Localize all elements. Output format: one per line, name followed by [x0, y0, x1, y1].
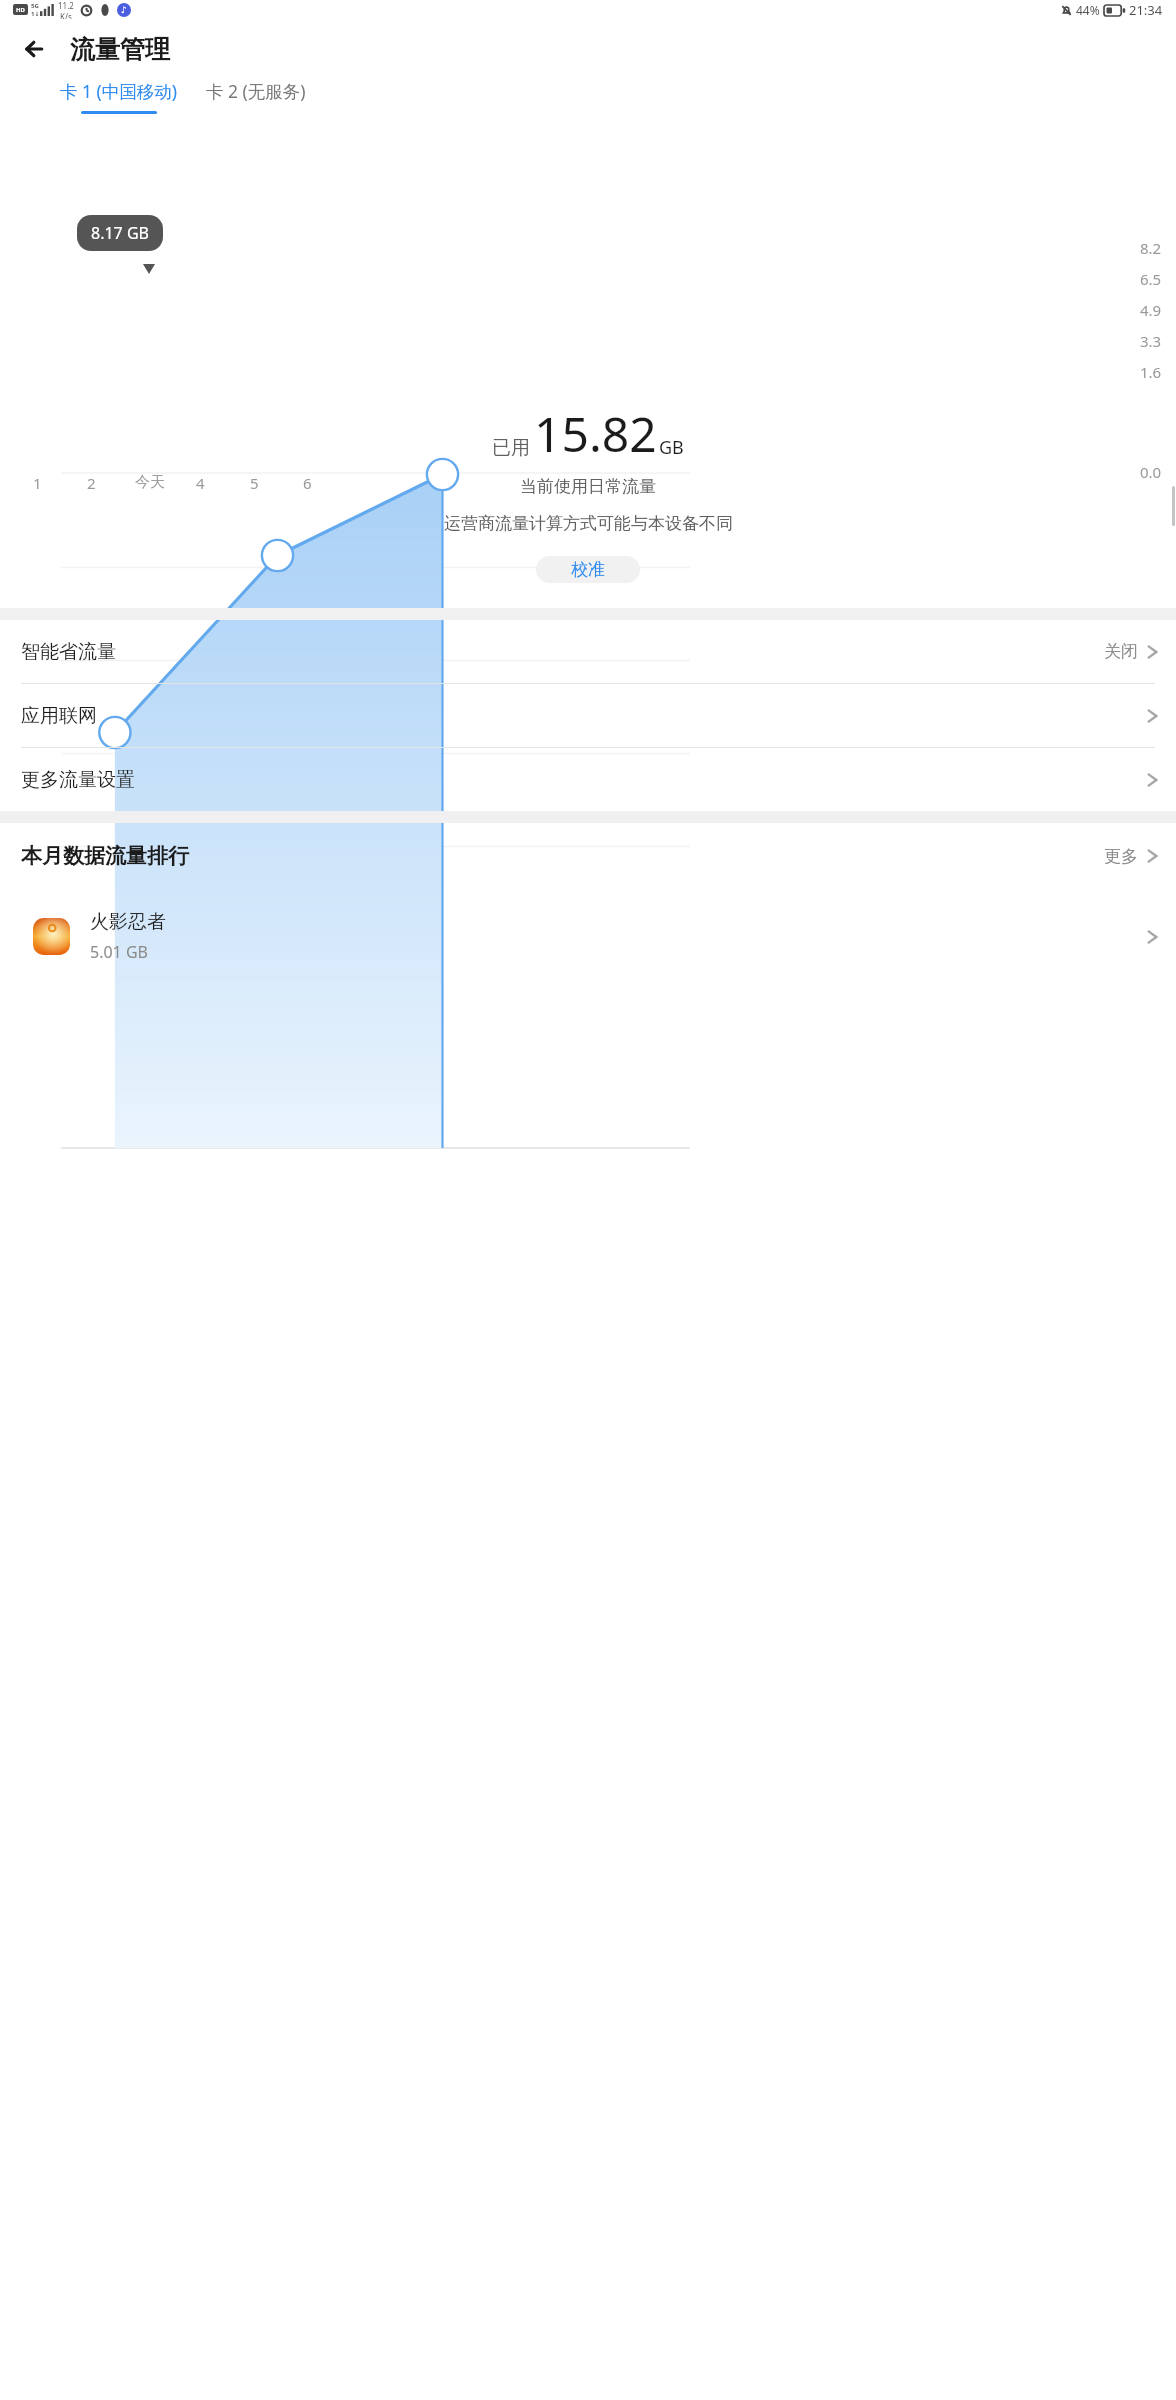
button[interactable]: 返回 — [10, 24, 60, 74]
staticText: GB — [659, 435, 684, 460]
staticText: 应用联网 — [21, 704, 97, 728]
staticText: 5.01 GB — [90, 941, 148, 963]
staticText: ♪ — [121, 5, 127, 15]
button[interactable]: 本月数据流量排行 — [21, 823, 1158, 889]
staticText: 1 — [33, 473, 42, 493]
button[interactable]: 火影忍者 — [33, 889, 1158, 984]
staticText: 4.9 — [1140, 300, 1162, 320]
staticText: 2 — [87, 473, 96, 493]
staticText: 4 — [196, 473, 205, 493]
staticText: 44% — [1076, 2, 1100, 18]
staticText: 更多流量设置 — [21, 768, 135, 792]
staticText: 15.82 — [534, 401, 657, 466]
staticText: 1.6 — [1140, 362, 1162, 382]
staticText: 3.3 — [1140, 331, 1162, 351]
staticText: 关闭 — [1104, 641, 1138, 662]
staticText: 卡 1 (中国移动) — [60, 79, 178, 103]
button[interactable]: 更多流量设置 — [0, 748, 1176, 811]
staticText: 校准 — [571, 559, 605, 580]
staticText: 6.5 — [1140, 269, 1162, 289]
button[interactable]: 校准 — [536, 556, 640, 583]
staticText: 8.2 — [1140, 238, 1162, 258]
staticText: 卡 2 (无服务) — [206, 79, 306, 103]
staticText: 更多 — [1104, 846, 1138, 867]
button[interactable]: 应用联网 — [0, 684, 1176, 748]
staticText: K/s — [60, 11, 72, 19]
staticText: 1↓ — [31, 10, 40, 18]
staticText: 11.2 — [58, 0, 74, 11]
staticText: 0.0 — [1140, 462, 1162, 482]
staticText: 6 — [303, 473, 312, 493]
staticText: 21:34 — [1129, 1, 1163, 19]
staticText: 5 — [250, 473, 259, 493]
staticText: 本月数据流量排行 — [21, 843, 189, 869]
staticText: HD — [16, 6, 25, 14]
staticText: 今天 — [135, 473, 165, 492]
button[interactable]: 智能省流量 — [0, 620, 1176, 684]
staticText: 智能省流量 — [21, 640, 116, 664]
staticText: 已用 — [492, 436, 530, 460]
staticText: 5G — [31, 2, 39, 10]
staticText: 火影忍者 — [90, 910, 166, 934]
staticText: 当前使用日常流量 — [520, 476, 656, 497]
staticText: 流量管理 — [70, 34, 170, 65]
staticText: 8.17 GB — [91, 222, 149, 244]
button[interactable]: 卡 2 (无服务) — [202, 79, 310, 103]
button[interactable]: 卡 1 (中国移动) — [56, 79, 182, 114]
staticText: 运营商流量计算方式可能与本设备不同 — [444, 513, 733, 534]
